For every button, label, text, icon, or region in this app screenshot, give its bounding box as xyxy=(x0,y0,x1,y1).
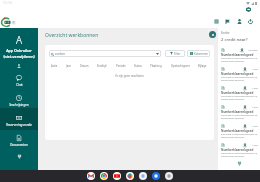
staticText: 12:34 xyxy=(2,0,13,5)
staticText: Reserveringsronde xyxy=(6,123,32,127)
staticText: informatie.nu programmeerkunst 46, xyxy=(221,152,258,155)
staticText: Numberklaarenkgoed xyxy=(221,53,254,57)
staticText: 1 java xyxy=(252,144,258,147)
staticText: 1 java xyxy=(252,68,258,71)
staticText: Numberklaarenkgoed xyxy=(221,110,254,114)
staticText: App Onkruiker xyxy=(6,48,32,53)
button[interactable]: 100 bytes xyxy=(218,46,260,65)
button[interactable]: Help xyxy=(209,31,216,38)
button[interactable]: Kolommen xyxy=(187,50,210,57)
button[interactable]: Chat xyxy=(0,71,38,91)
button[interactable]: Reserveringsronde xyxy=(0,111,38,131)
button[interactable]: 1 java xyxy=(218,122,260,141)
button[interactable]: Refresh xyxy=(246,17,254,25)
button[interactable]: Gmail xyxy=(87,172,95,180)
staticText: Numberklaarenkgoed xyxy=(221,91,254,95)
staticText: informatie.nu programmeerkunst 46, xyxy=(221,133,258,136)
button[interactable]: App xyxy=(165,172,173,180)
button[interactable]: Profile xyxy=(235,17,243,25)
button[interactable]: Photos xyxy=(126,172,134,180)
staticText: Bijlage xyxy=(198,64,207,68)
staticText: hetverbinden flankcbar... xyxy=(221,60,246,63)
button[interactable]: App xyxy=(139,172,147,180)
button[interactable]: Filter xyxy=(165,50,185,57)
staticText: hetverbinden flankcbar... xyxy=(221,117,246,120)
staticText: hetverbinden flankcbar... xyxy=(221,98,246,101)
staticText: Chat xyxy=(16,83,23,87)
staticText: Documenten xyxy=(10,143,28,147)
button[interactable]: Inschrijvingen xyxy=(0,91,38,111)
staticText: Actie xyxy=(51,64,58,68)
button[interactable]: Menu xyxy=(212,17,220,25)
staticText: 2 credit naar? xyxy=(221,37,248,43)
staticText: informatie.nu programmeerkunst 46, xyxy=(221,57,258,60)
staticText: A xyxy=(16,33,23,47)
staticText: zoeken xyxy=(55,52,66,56)
button[interactable]: App xyxy=(152,172,160,180)
staticText: Numberklaarenkgoed xyxy=(221,72,254,76)
button[interactable]: Messages xyxy=(223,17,231,25)
staticText: Numberklaarenkgoed xyxy=(221,129,254,133)
button[interactable]: 1 java xyxy=(218,141,260,160)
button[interactable]: YouTube xyxy=(113,172,121,180)
staticText: Status xyxy=(134,64,142,68)
button[interactable]: 1 java xyxy=(218,84,260,103)
staticText: informatie.nu programmeerkunst 46, xyxy=(221,114,258,117)
staticText: Numberklaarenkgoed xyxy=(221,148,254,152)
button[interactable]: 1 java xyxy=(218,103,260,122)
staticText: hetverbinden flankcbar... xyxy=(221,155,246,158)
staticText: 1 java xyxy=(252,125,258,128)
staticText: 100 bytes xyxy=(248,49,258,52)
staticText: Filter xyxy=(174,52,181,56)
staticText: Eindtijd xyxy=(97,64,107,68)
staticText: Periode xyxy=(116,64,126,68)
staticText: Jaar xyxy=(66,64,71,68)
staticText: informatie.nu programmeerkunst 46, xyxy=(221,76,258,79)
staticText: (niet-verwijderen) xyxy=(3,54,35,59)
staticText: Datum xyxy=(80,64,89,68)
staticText: Er zijn geen resultaten xyxy=(49,74,210,78)
staticText: informatie.nu programmeerkunst 46, xyxy=(221,95,258,98)
staticText: Inschrijvingen xyxy=(9,103,29,107)
staticText: Plaatsing xyxy=(150,64,162,68)
button[interactable]: Chrome xyxy=(100,172,108,180)
staticText: Opdrachtgever xyxy=(171,64,190,68)
staticText: Eerder xyxy=(221,31,230,35)
staticText: 1 java xyxy=(252,87,258,90)
button[interactable]: Documenten xyxy=(0,131,38,151)
staticText: Kolommen xyxy=(194,52,208,56)
staticText: hetverbinden flankcbar... xyxy=(221,136,246,139)
staticText: Overzicht werkbonnen xyxy=(45,32,99,39)
staticText: hetverbinden flankcbar... xyxy=(221,79,246,82)
staticText: 1 java xyxy=(252,106,258,109)
button[interactable]: zoeken xyxy=(49,50,161,57)
button[interactable]: 1 java xyxy=(218,65,260,84)
